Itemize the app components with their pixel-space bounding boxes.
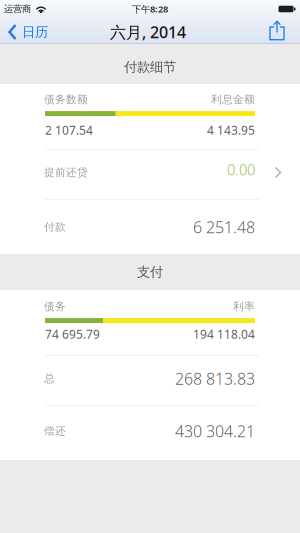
- staticText: 付款细节: [124, 59, 176, 75]
- staticText: 0.00: [227, 160, 255, 179]
- staticText: 运营商: [4, 3, 31, 15]
- staticText: 总: [44, 372, 55, 385]
- button[interactable]: Share: [269, 22, 300, 42]
- staticText: 6 251.48: [193, 216, 255, 238]
- staticText: 194 118.04: [193, 326, 255, 342]
- staticText: 2 107.54: [45, 122, 93, 138]
- staticText: 六月, 2014: [110, 21, 186, 43]
- staticText: 268 813.83: [175, 368, 255, 389]
- staticText: 偿还: [44, 424, 66, 437]
- staticText: 4 143.95: [207, 122, 255, 138]
- staticText: 利率: [233, 300, 255, 313]
- staticText: 利息金额: [211, 93, 255, 106]
- button[interactable]: 提前还贷: [0, 150, 300, 199]
- staticText: 430 304.21: [175, 420, 255, 442]
- staticText: 74 695.79: [45, 326, 100, 342]
- button[interactable]: 日历: [0, 24, 48, 40]
- staticText: 日历: [22, 24, 48, 40]
- staticText: 债务: [44, 300, 66, 313]
- staticText: 付款: [44, 220, 66, 233]
- staticText: 支付: [137, 264, 163, 280]
- staticText: 提前还贷: [44, 166, 88, 179]
- staticText: 下午8:28: [132, 3, 168, 15]
- staticText: 债务数额: [44, 93, 88, 106]
